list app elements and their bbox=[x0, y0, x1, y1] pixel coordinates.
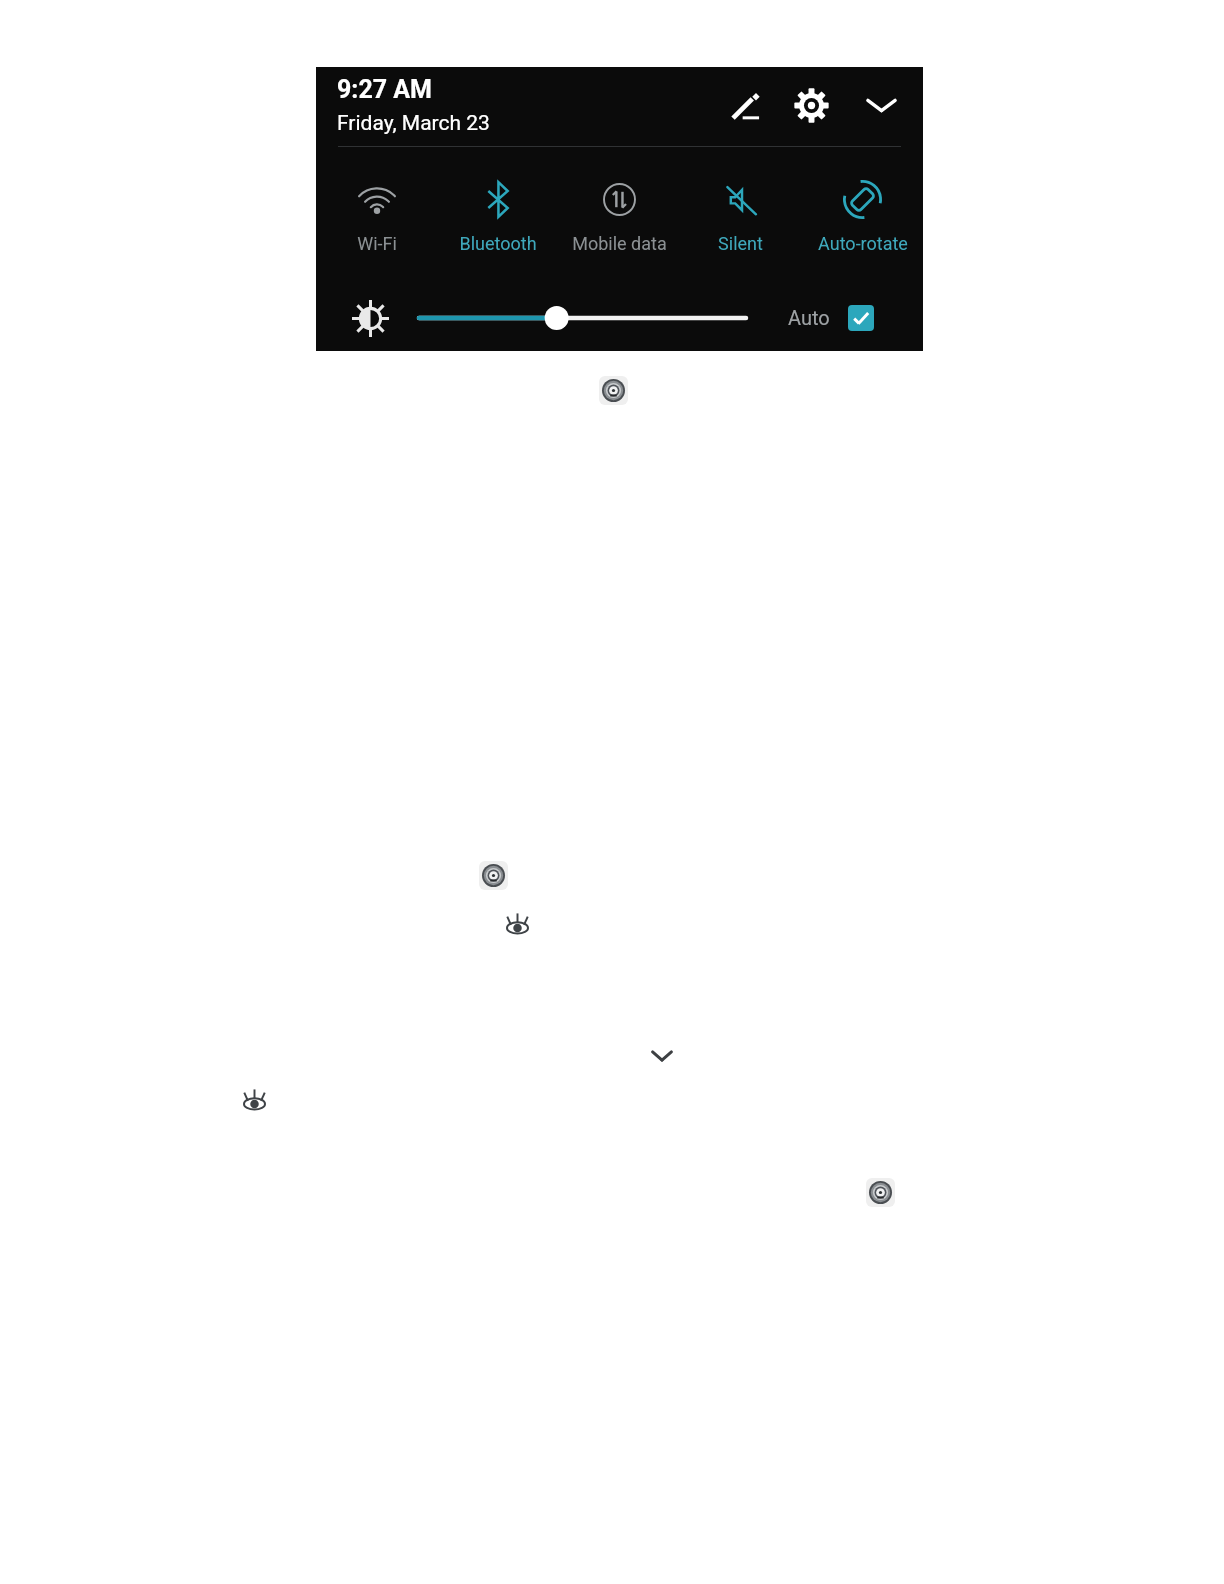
button[interactable]: Collapse bbox=[859, 83, 903, 127]
button[interactable]: Silent bbox=[680, 176, 801, 260]
button[interactable]: Settings bbox=[789, 83, 833, 127]
button[interactable]: Mobile data bbox=[559, 176, 680, 260]
staticText: 9:27 AM bbox=[337, 75, 432, 104]
button[interactable]: Auto-rotate bbox=[802, 176, 923, 260]
staticText: Mobile data bbox=[572, 233, 667, 254]
staticText: Auto bbox=[788, 306, 830, 329]
button[interactable]: Edit bbox=[722, 82, 766, 126]
button[interactable]: Visibility bbox=[243, 1089, 266, 1110]
staticText: Wi-Fi bbox=[357, 233, 397, 254]
button[interactable]: Wi-Fi bbox=[316, 176, 437, 260]
staticText: Auto-rotate bbox=[818, 233, 908, 254]
button[interactable]: Visibility bbox=[506, 913, 529, 934]
staticText: Bluetooth bbox=[459, 233, 537, 254]
button[interactable]: Bluetooth bbox=[437, 176, 558, 260]
button[interactable]: App icon bbox=[479, 861, 508, 890]
staticText: Silent bbox=[718, 233, 763, 254]
button[interactable]: App icon bbox=[866, 1178, 895, 1207]
button[interactable]: App icon bbox=[599, 376, 628, 405]
button[interactable]: Brightness level bbox=[419, 302, 746, 334]
button[interactable]: Auto brightness bbox=[848, 305, 874, 331]
button[interactable]: Expand bbox=[652, 1050, 672, 1062]
button[interactable]: Brightness bbox=[348, 296, 392, 340]
staticText: Friday, March 23 bbox=[337, 111, 490, 136]
